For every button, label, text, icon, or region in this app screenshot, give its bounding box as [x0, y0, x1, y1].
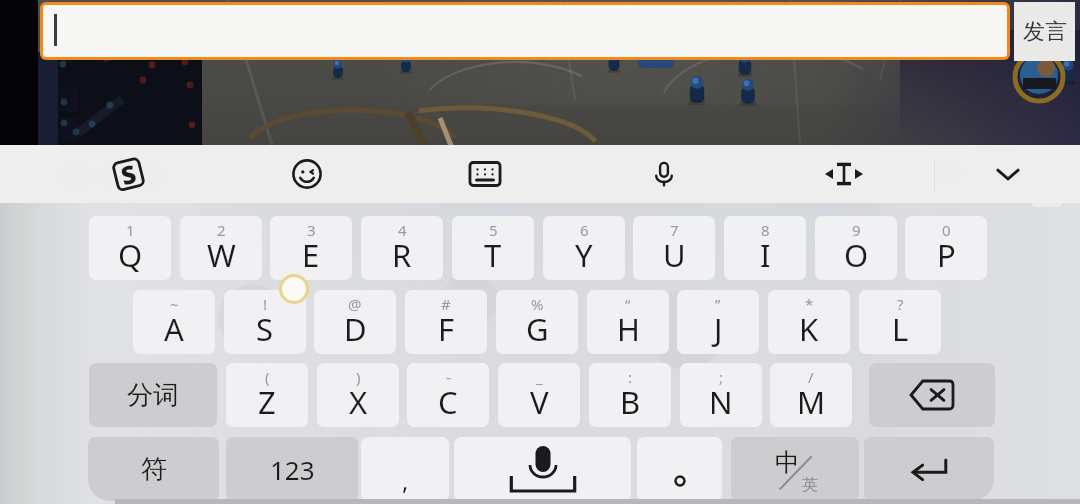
staticText: L	[892, 308, 909, 350]
button[interactable]: Chinese English toggle	[731, 437, 859, 501]
staticText: O	[844, 234, 869, 276]
button[interactable]: ”	[677, 290, 759, 354]
button[interactable]: Keyboard layout	[456, 145, 514, 203]
staticText: 0	[942, 220, 951, 240]
staticText: )	[356, 367, 361, 387]
staticText: A	[164, 308, 184, 350]
staticText: !	[263, 294, 268, 314]
staticText: 1	[126, 220, 135, 240]
button[interactable]: 发言	[1014, 2, 1075, 61]
staticText: 2	[217, 220, 226, 240]
staticText: Q	[118, 234, 143, 276]
button[interactable]: 2	[180, 216, 262, 280]
staticText: @	[348, 294, 362, 314]
button[interactable]: *	[768, 290, 850, 354]
button[interactable]: 7	[633, 216, 715, 280]
button[interactable]: 8	[724, 216, 806, 280]
staticText: P	[937, 234, 956, 276]
staticText: ”	[715, 294, 721, 314]
button[interactable]: 符	[88, 437, 219, 501]
staticText: 中	[775, 447, 800, 478]
button[interactable]: )	[317, 363, 399, 427]
staticText: N	[709, 381, 733, 423]
button[interactable]: 123	[226, 437, 358, 501]
button[interactable]: (	[226, 363, 308, 427]
button[interactable]: 4	[361, 216, 443, 280]
button[interactable]: 5	[452, 216, 534, 280]
staticText: M	[797, 381, 826, 423]
staticText: E	[302, 234, 320, 276]
button[interactable]	[637, 437, 722, 501]
staticText: R	[392, 234, 412, 276]
button[interactable]: Enter	[864, 437, 994, 501]
button[interactable]: Sogou input	[99, 145, 157, 203]
staticText: B	[620, 381, 641, 423]
staticText: U	[663, 234, 686, 276]
button[interactable]: Emoji	[278, 145, 336, 203]
staticText: ?	[897, 294, 904, 314]
button[interactable]: 3	[270, 216, 352, 280]
button[interactable]: 1	[89, 216, 171, 280]
staticText: -	[446, 367, 451, 387]
staticText: Z	[258, 381, 276, 423]
button[interactable]: /	[770, 363, 852, 427]
staticText: 8	[761, 220, 770, 240]
button[interactable]: :	[589, 363, 671, 427]
staticText: 英	[802, 475, 818, 495]
button[interactable]: @	[314, 290, 396, 354]
button[interactable]: Move cursor	[815, 145, 873, 203]
button[interactable]: 6	[543, 216, 625, 280]
button[interactable]: -	[407, 363, 489, 427]
button[interactable]: 9	[815, 216, 897, 280]
staticText: S	[256, 308, 274, 350]
button[interactable]: ;	[680, 363, 762, 427]
staticText: #	[441, 294, 451, 314]
staticText: ~	[170, 294, 179, 314]
staticText: G	[526, 308, 549, 350]
button[interactable]: Space / voice	[454, 437, 631, 501]
staticText: %	[531, 294, 544, 314]
staticText: 7	[670, 220, 679, 240]
button[interactable]: _	[498, 363, 580, 427]
staticText: F	[438, 308, 455, 350]
staticText: S	[117, 156, 140, 192]
button[interactable]: #	[405, 290, 487, 354]
staticText: 6	[580, 220, 589, 240]
staticText: 3	[307, 220, 316, 240]
staticText: 4	[398, 220, 407, 240]
button[interactable]: %	[496, 290, 578, 354]
button[interactable]: “	[587, 290, 669, 354]
staticText: ,	[402, 464, 409, 497]
staticText: 分词	[127, 379, 179, 412]
staticText: 123	[270, 452, 315, 487]
staticText: *	[805, 294, 814, 314]
staticText: J	[714, 308, 723, 350]
button[interactable]: ,	[361, 437, 449, 501]
staticText: :	[628, 367, 633, 387]
staticText: /	[808, 367, 814, 387]
staticText: 9	[852, 220, 861, 240]
button[interactable]	[43, 5, 1007, 57]
staticText: 符	[141, 453, 167, 486]
button[interactable]: ~	[133, 290, 215, 354]
staticText: 5	[489, 220, 498, 240]
button[interactable]: Hide keyboard	[979, 145, 1037, 203]
button[interactable]: Voice input	[635, 145, 693, 203]
staticText: C	[438, 381, 458, 423]
staticText: H	[617, 308, 640, 350]
staticText: D	[344, 308, 367, 350]
staticText: (	[265, 367, 270, 387]
staticText: I	[760, 234, 771, 276]
button[interactable]: 0	[905, 216, 987, 280]
button[interactable]: !	[224, 290, 306, 354]
button[interactable]: 分词	[89, 363, 217, 427]
staticText: K	[799, 308, 819, 350]
staticText: ;	[719, 367, 724, 387]
button[interactable]: Backspace	[869, 363, 995, 427]
staticText: 发言	[1023, 18, 1067, 46]
staticText: X	[349, 381, 368, 423]
staticText: T	[484, 234, 502, 276]
staticText: Y	[575, 234, 593, 276]
button[interactable]: ?	[859, 290, 941, 354]
staticText: “	[625, 294, 631, 314]
